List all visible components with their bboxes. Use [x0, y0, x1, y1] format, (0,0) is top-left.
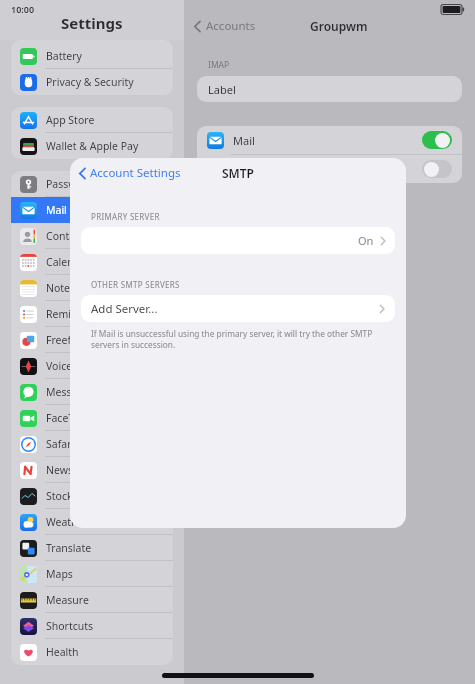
button[interactable]: Mail on [422, 131, 452, 149]
staticText: Groupwm [310, 18, 368, 34]
staticText: Translate [46, 541, 92, 555]
button[interactable]: Add Server... [91, 295, 385, 322]
staticText: Weather [46, 515, 88, 529]
staticText: Settings [61, 13, 123, 33]
button[interactable]: Label [197, 76, 462, 102]
staticText: Messages [46, 385, 95, 399]
button[interactable]: Voice Memos [11, 353, 173, 379]
staticText: 10:00 [11, 3, 35, 15]
staticText: Add Server... [91, 301, 158, 317]
staticText: Calendar [46, 255, 91, 269]
staticText: IMAP [208, 59, 230, 71]
button[interactable]: Reminders [11, 301, 173, 327]
button[interactable]: Mail [11, 197, 173, 223]
button[interactable]: Calendar [11, 249, 173, 275]
staticText: Maps [46, 567, 73, 581]
button[interactable]: News [11, 457, 173, 483]
button[interactable]: Wallet & Apple Pay [11, 133, 173, 159]
staticText: Contacts [46, 229, 90, 243]
staticText: Account Settings [90, 165, 181, 181]
staticText: Reminders [46, 307, 100, 321]
button[interactable]: Mail [207, 126, 452, 154]
staticText: On [358, 233, 374, 248]
button[interactable]: Health [11, 639, 173, 665]
button[interactable]: Accounts [193, 18, 256, 34]
button[interactable]: Contacts [11, 223, 173, 249]
staticText: Safari [46, 437, 75, 451]
staticText: FaceTime [46, 411, 93, 425]
staticText: SMTP [222, 165, 254, 181]
staticText: App Store [46, 113, 95, 127]
staticText: Health [46, 645, 79, 659]
staticText: Stocks [46, 489, 78, 503]
staticText: If Mail is unsuccessful using the primar… [91, 328, 391, 350]
button[interactable]: Translate [11, 535, 173, 561]
button[interactable]: Measure [11, 587, 173, 613]
button[interactable]: Weather [11, 509, 173, 535]
button[interactable]: Shortcuts [11, 613, 173, 639]
staticText: Label [208, 82, 236, 97]
staticText: OTHER SMTP SERVERS [91, 279, 180, 290]
button[interactable]: Battery [11, 43, 173, 69]
staticText: Wallet & Apple Pay [46, 139, 139, 153]
button[interactable]: Account Settings [78, 165, 181, 181]
staticText: Mail [46, 203, 67, 217]
staticText: Notes [233, 162, 264, 177]
staticText: Freeform [46, 333, 92, 347]
staticText: Privacy & Security [46, 75, 134, 89]
button[interactable]: On [81, 227, 386, 254]
button[interactable]: Freeform [11, 327, 173, 353]
button[interactable]: Notes [11, 275, 173, 301]
button[interactable]: App Store [11, 107, 173, 133]
staticText: News [46, 463, 73, 477]
button[interactable]: FaceTime [11, 405, 173, 431]
button[interactable]: Notes off [422, 160, 452, 178]
button[interactable]: Messages [11, 379, 173, 405]
button[interactable]: Notes [207, 155, 452, 183]
staticText: Shortcuts [46, 619, 94, 633]
staticText: PRIMARY SERVER [91, 211, 160, 222]
staticText: Passwords [46, 177, 99, 191]
button[interactable]: Privacy & Security [11, 69, 173, 95]
staticText: Accounts [206, 18, 256, 34]
staticText: Measure [46, 593, 89, 607]
button[interactable]: Safari [11, 431, 173, 457]
staticText: Battery [46, 49, 82, 63]
staticText: Notes [46, 281, 76, 295]
staticText: Mail [233, 133, 255, 148]
button[interactable]: Passwords [11, 171, 173, 197]
button[interactable]: Stocks [11, 483, 173, 509]
button[interactable]: Maps [11, 561, 173, 587]
staticText: Voice Memos [46, 359, 112, 373]
